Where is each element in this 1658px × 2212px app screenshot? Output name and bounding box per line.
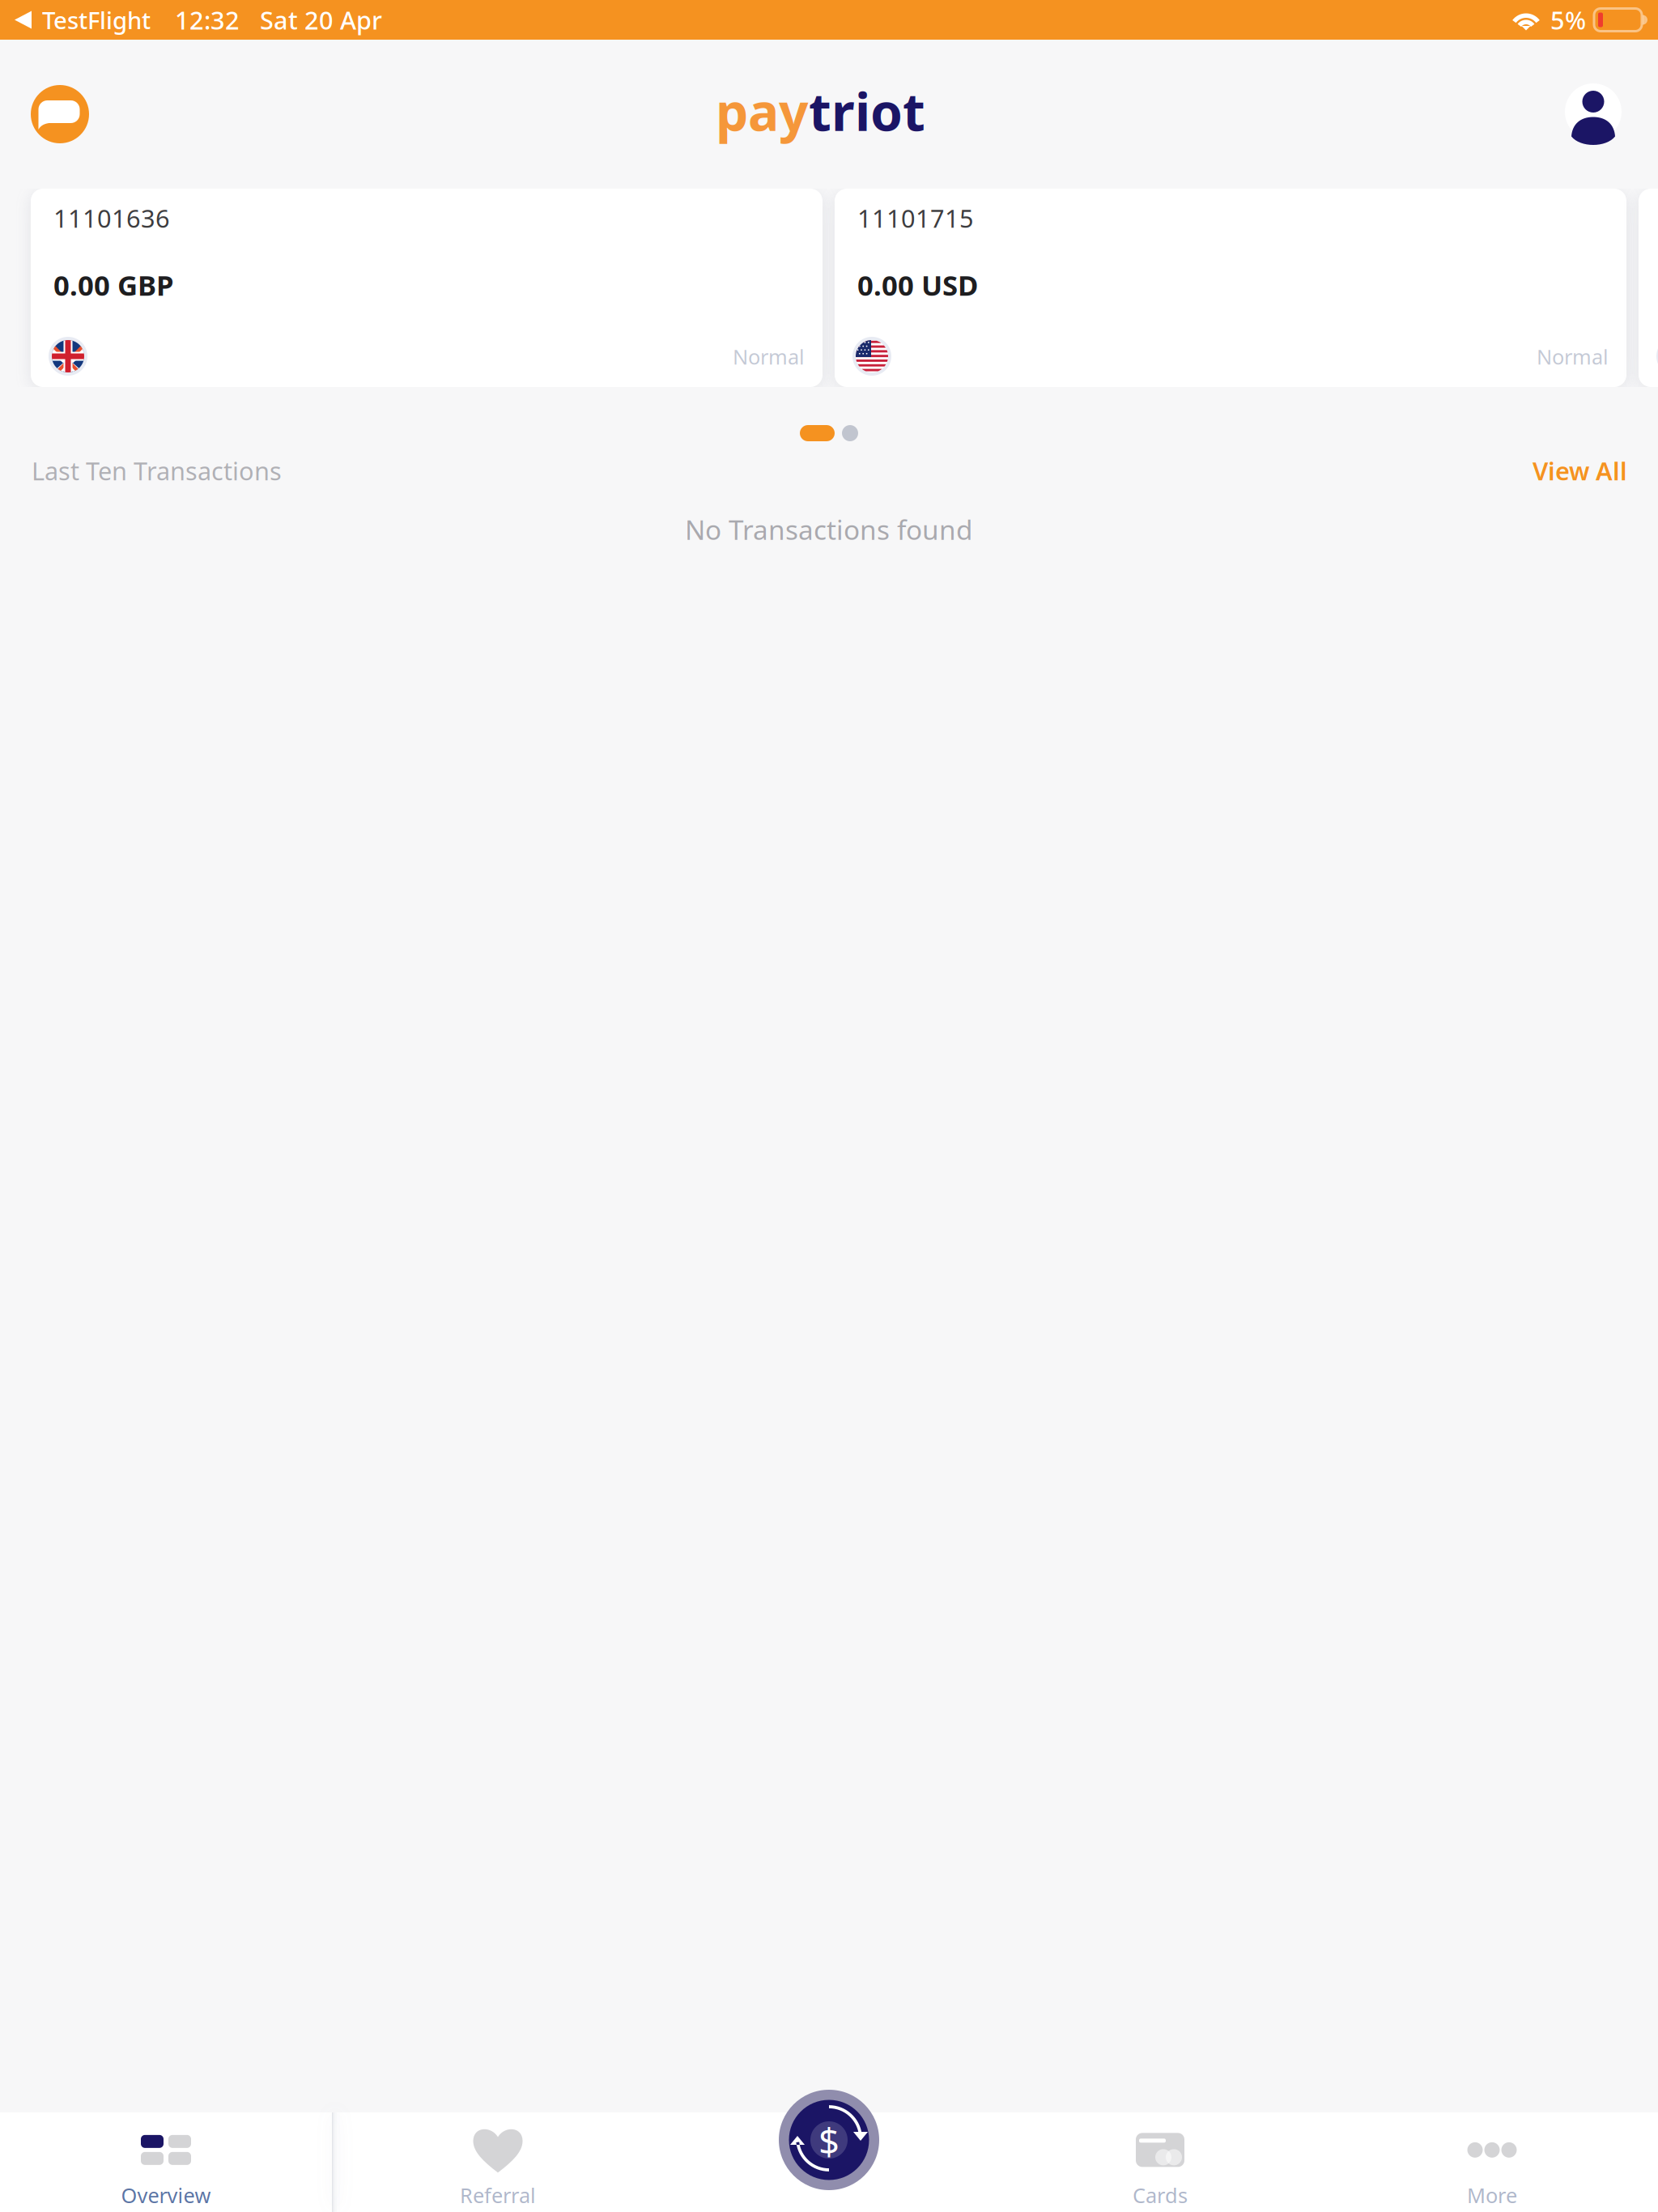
staticText: More bbox=[1467, 2182, 1517, 2209]
button[interactable]: Referral bbox=[332, 2112, 664, 2212]
button[interactable]: Overview bbox=[0, 2112, 332, 2212]
staticText: $ bbox=[818, 2116, 840, 2165]
staticText: Overview bbox=[121, 2182, 211, 2209]
staticText: 0.00 USD bbox=[857, 266, 978, 303]
button[interactable]: Support chat bbox=[0, 65, 100, 164]
staticText: TestFlight bbox=[42, 4, 151, 36]
staticText: 0.00 GBP bbox=[53, 266, 174, 303]
button[interactable]: More bbox=[1326, 2112, 1658, 2212]
button[interactable]: View All bbox=[1533, 454, 1658, 487]
staticText: pay bbox=[716, 77, 809, 145]
button[interactable]: 11101636 bbox=[31, 189, 823, 387]
staticText: View All bbox=[1533, 454, 1627, 487]
button[interactable]: Profile bbox=[1554, 66, 1658, 163]
staticText: Normal bbox=[733, 343, 805, 370]
staticText: No Transactions found bbox=[685, 511, 973, 547]
staticText: Sat 20 Apr bbox=[260, 3, 382, 36]
staticText: Normal bbox=[1537, 343, 1609, 370]
staticText: Last Ten Transactions bbox=[32, 454, 282, 487]
button[interactable]: Exchange currency bbox=[779, 2090, 879, 2190]
staticText: 11101636 bbox=[53, 202, 170, 235]
staticText: Referral bbox=[460, 2182, 536, 2209]
staticText: 5% bbox=[1550, 3, 1586, 36]
staticText: triot bbox=[809, 77, 925, 145]
staticText: 11101715 bbox=[857, 202, 974, 235]
button[interactable]: Cards bbox=[994, 2112, 1326, 2212]
staticText: Cards bbox=[1133, 2182, 1188, 2209]
button[interactable]: 11101715 bbox=[835, 189, 1626, 387]
staticText: 12:32 bbox=[175, 3, 240, 36]
